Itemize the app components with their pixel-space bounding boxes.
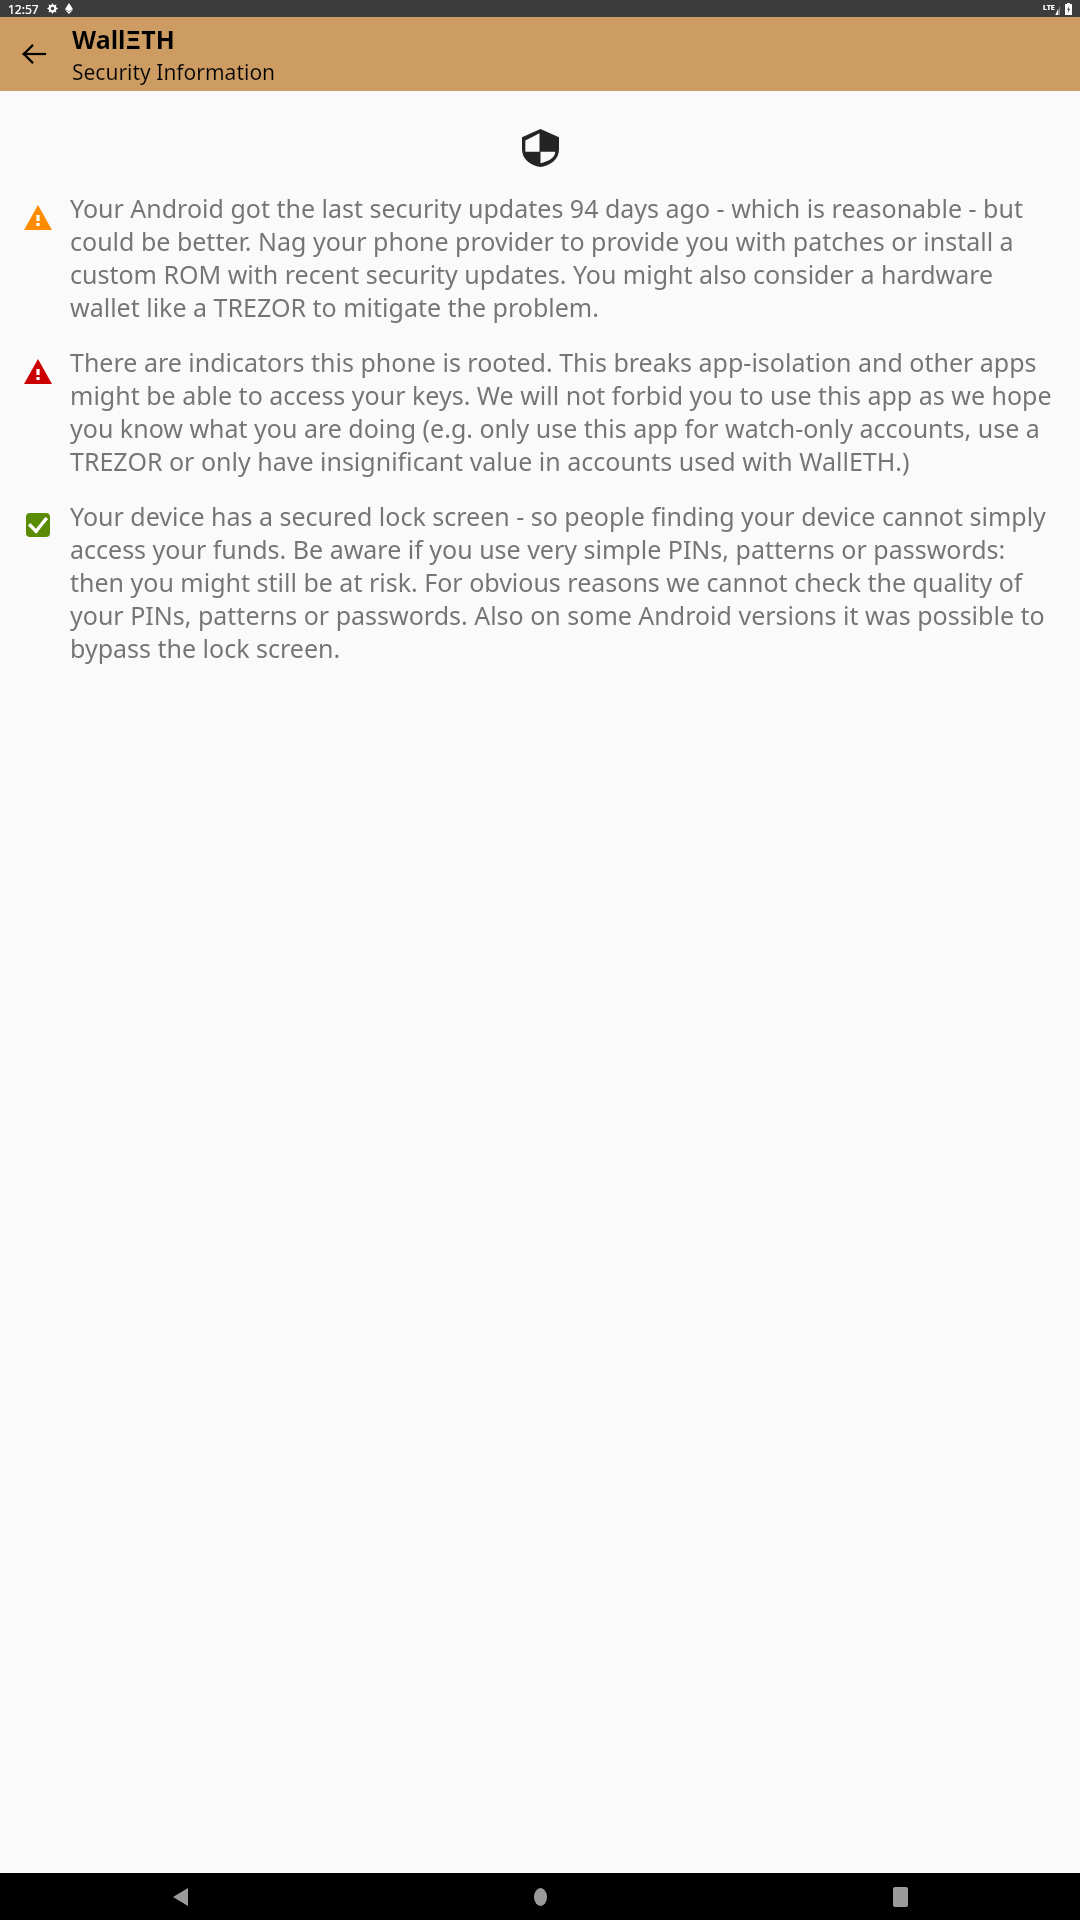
- staticText: LTE: [1043, 3, 1055, 11]
- button[interactable]: Your Android got the last security updat…: [0, 191, 1080, 324]
- staticText: There are indicators this phone is roote…: [70, 345, 1064, 478]
- button[interactable]: Recent apps: [720, 1873, 1080, 1920]
- staticText: 12:57: [8, 1, 39, 17]
- button[interactable]: Back: [0, 1873, 360, 1920]
- button[interactable]: Home: [360, 1873, 720, 1920]
- button[interactable]: Your device has a secured lock screen - …: [0, 499, 1080, 665]
- staticText: Your Android got the last security updat…: [70, 191, 1064, 324]
- staticText: Security Information: [72, 58, 276, 87]
- button[interactable]: There are indicators this phone is roote…: [0, 345, 1080, 478]
- button[interactable]: Back: [10, 30, 58, 78]
- staticText: WallΞTH: [72, 22, 175, 56]
- staticText: Your device has a secured lock screen - …: [70, 499, 1064, 665]
